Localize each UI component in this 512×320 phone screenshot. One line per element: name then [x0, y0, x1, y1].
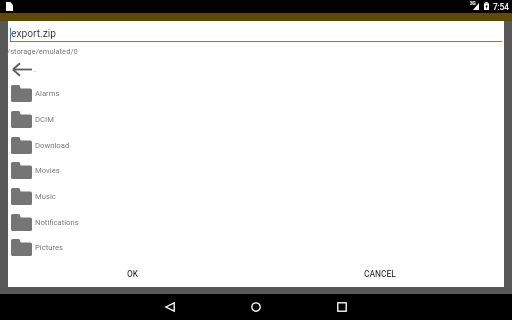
button[interactable]: Alarms — [8, 85, 504, 102]
staticText: .. — [33, 65, 38, 74]
staticText: 7:54 — [493, 2, 509, 12]
button[interactable]: Download — [8, 137, 504, 154]
button[interactable]: CANCEL — [343, 261, 417, 286]
button[interactable]: OK — [96, 261, 170, 286]
button[interactable]: .. — [8, 61, 504, 78]
button[interactable]: Music — [8, 188, 504, 205]
button[interactable]: Recent apps — [320, 294, 364, 320]
button[interactable]: Home — [234, 294, 278, 320]
staticText: export.zip — [11, 28, 56, 40]
staticText: Movies — [35, 166, 60, 175]
staticText: Music — [35, 192, 56, 201]
button[interactable]: Pictures — [8, 239, 504, 256]
button[interactable]: Back — [148, 294, 192, 320]
staticText: Download — [35, 141, 70, 150]
button[interactable]: DCIM — [8, 111, 504, 128]
staticText: Pictures — [35, 243, 64, 252]
button[interactable]: Notifications — [8, 214, 504, 231]
staticText: /storage/emulated/0 — [7, 47, 78, 56]
button[interactable] — [10, 21, 501, 42]
staticText: Notifications — [35, 218, 79, 227]
button[interactable]: Movies — [8, 162, 504, 179]
staticText: 3G — [470, 1, 476, 6]
staticText: OK — [127, 269, 139, 279]
staticText: Alarms — [35, 89, 60, 98]
staticText: CANCEL — [364, 269, 396, 279]
staticText: DCIM — [35, 115, 54, 124]
